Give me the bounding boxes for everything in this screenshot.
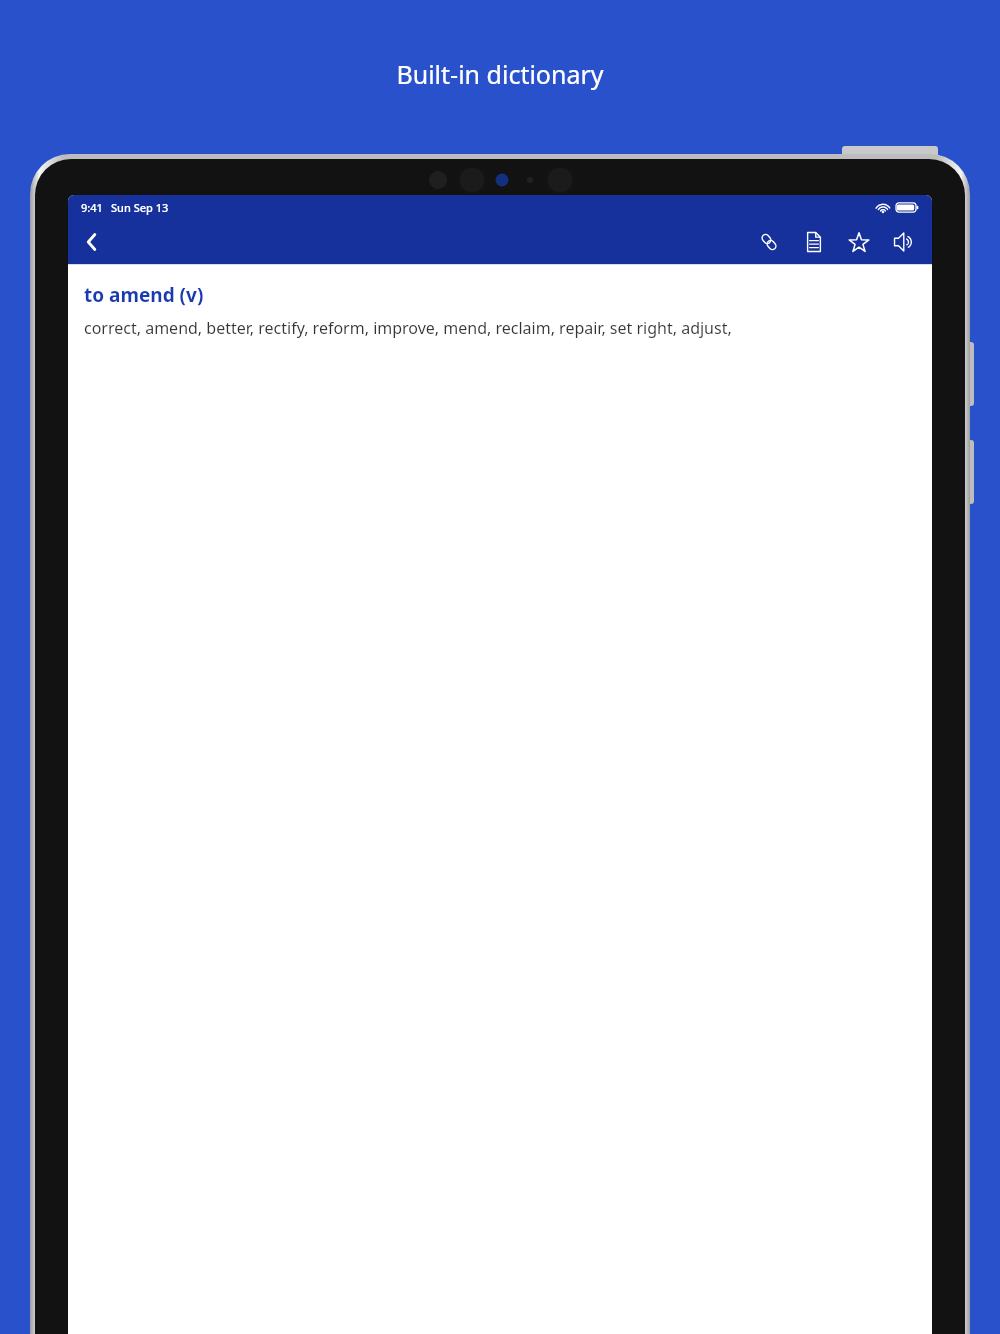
button[interactable]: Add to favorites bbox=[836, 219, 881, 264]
button[interactable]: Back bbox=[70, 220, 114, 264]
staticText: 9:41 bbox=[81, 200, 103, 215]
button[interactable]: Copy link bbox=[746, 219, 791, 264]
button[interactable]: Show definition bbox=[791, 219, 836, 264]
staticText: Built-in dictionary bbox=[396, 57, 604, 91]
button[interactable]: Pronounce bbox=[881, 219, 926, 264]
staticText: to amend (v) bbox=[84, 282, 204, 308]
staticText: correct, amend, better, rectify, reform,… bbox=[84, 317, 732, 339]
staticText: Sun Sep 13 bbox=[111, 200, 169, 215]
